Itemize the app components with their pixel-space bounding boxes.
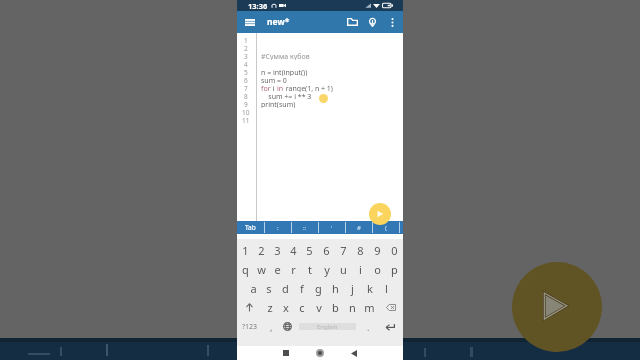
button[interactable]: 1 — [237, 241, 253, 260]
button[interactable]: x — [278, 298, 294, 317]
staticText: m — [364, 300, 375, 315]
staticText: p — [391, 262, 398, 277]
staticText: j — [351, 281, 354, 296]
staticText: 5 — [244, 68, 248, 76]
button[interactable]: g — [310, 279, 327, 298]
staticText: Tab — [245, 223, 256, 232]
staticText: for — [261, 84, 271, 92]
button[interactable]: 2 — [253, 241, 269, 260]
staticText: i — [359, 262, 362, 277]
button[interactable]: c — [294, 298, 310, 317]
staticText: t — [308, 262, 312, 277]
button[interactable]: ?123 — [237, 317, 263, 336]
staticText: 2 — [258, 243, 265, 258]
button[interactable]: 9 — [369, 241, 386, 260]
button[interactable]: Hints — [362, 11, 382, 33]
staticText: y — [324, 262, 330, 277]
button[interactable]: Play video — [512, 262, 602, 352]
staticText: 0 — [391, 243, 398, 258]
button[interactable]: d — [277, 279, 293, 298]
staticText: 7 — [340, 243, 347, 258]
button[interactable]: e — [269, 260, 285, 279]
button[interactable]: 8 — [352, 241, 369, 260]
staticText: 2 — [244, 44, 248, 52]
staticText: z — [267, 300, 273, 315]
button[interactable]: l — [378, 279, 395, 298]
button[interactable]: t — [301, 260, 318, 279]
staticText: 6 — [244, 76, 248, 84]
button[interactable]: Recent apps — [269, 346, 303, 360]
staticText: 8 — [357, 243, 364, 258]
button[interactable]: ' — [318, 221, 345, 234]
staticText: b — [332, 300, 339, 315]
staticText: in — [277, 84, 284, 92]
staticText: English — [317, 323, 338, 330]
button[interactable]: i — [352, 260, 369, 279]
staticText: h — [332, 281, 339, 296]
button[interactable]: . — [360, 317, 377, 336]
button[interactable]: Shift — [237, 298, 262, 317]
staticText: u — [340, 262, 347, 277]
staticText: range(1, n + 1) — [284, 84, 333, 92]
button[interactable]: : — [264, 221, 291, 234]
button[interactable]: , — [263, 317, 279, 336]
staticText: :: — [303, 224, 307, 232]
button[interactable]: 6 — [318, 241, 335, 260]
button[interactable]: Open file — [342, 11, 362, 33]
button[interactable]: Backspace — [378, 298, 403, 317]
button[interactable]: u — [335, 260, 352, 279]
button[interactable]: n — [344, 298, 361, 317]
button[interactable]: Open navigation menu — [237, 11, 262, 33]
button[interactable]: Run — [369, 203, 391, 225]
staticText: 5 — [306, 243, 313, 258]
button[interactable]: 3 — [269, 241, 285, 260]
button[interactable]: o — [369, 260, 386, 279]
button[interactable]: More options — [382, 11, 403, 33]
button[interactable]: k — [361, 279, 378, 298]
button[interactable]: j — [344, 279, 361, 298]
button[interactable]: Back — [337, 346, 371, 360]
button[interactable]: English — [299, 323, 356, 330]
staticText: 9 — [244, 100, 248, 108]
staticText: 7 — [244, 84, 248, 92]
staticText: n — [349, 300, 356, 315]
button[interactable]: Change language — [279, 317, 295, 336]
staticText: 3 — [274, 243, 281, 258]
button[interactable]: s — [261, 279, 277, 298]
button[interactable]: # — [345, 221, 372, 234]
button[interactable]: q — [237, 260, 253, 279]
button[interactable]: a — [245, 279, 261, 298]
button[interactable]: Home — [303, 346, 337, 360]
staticText: v — [316, 300, 322, 315]
staticText: 4 — [290, 243, 297, 258]
button[interactable]: v — [310, 298, 327, 317]
button[interactable]: w — [253, 260, 269, 279]
button[interactable]: y — [318, 260, 335, 279]
button[interactable]: m — [361, 298, 378, 317]
staticText: i — [271, 84, 277, 92]
staticText: l — [385, 281, 388, 296]
button[interactable]: ( — [372, 221, 399, 234]
button[interactable]: 5 — [301, 241, 318, 260]
button[interactable]: 0 — [386, 241, 403, 260]
staticText: r — [291, 262, 296, 277]
staticText: 11 — [242, 116, 250, 124]
button[interactable]: Enter — [377, 317, 403, 336]
button[interactable]: 7 — [335, 241, 352, 260]
button[interactable]: f — [293, 279, 310, 298]
staticText: 8 — [244, 92, 248, 100]
button[interactable]: h — [327, 279, 344, 298]
staticText: # — [357, 224, 361, 232]
staticText: n = int(input()) — [261, 68, 308, 76]
button[interactable]: p — [386, 260, 403, 279]
button[interactable]: r — [285, 260, 301, 279]
staticText: 6 — [323, 243, 330, 258]
staticText: 13:36 — [248, 1, 268, 11]
staticText: new* — [267, 16, 290, 28]
button[interactable]: Tab — [237, 221, 264, 234]
button[interactable]: :: — [291, 221, 318, 234]
button[interactable]: z — [262, 298, 278, 317]
staticText: c — [299, 300, 305, 315]
button[interactable]: 4 — [285, 241, 301, 260]
button[interactable]: b — [327, 298, 344, 317]
